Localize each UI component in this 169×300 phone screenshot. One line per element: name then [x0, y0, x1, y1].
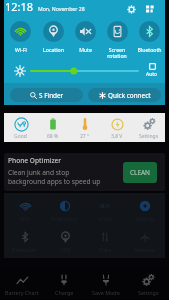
staticText: Location — [43, 46, 64, 53]
button[interactable]: 3,8 V — [101, 116, 133, 140]
button[interactable]: Quick connect — [88, 88, 161, 102]
button[interactable]: Auto — [143, 63, 161, 78]
button[interactable]: Settings — [133, 116, 165, 140]
staticText: Data — [99, 246, 111, 253]
staticText: Mute — [79, 46, 92, 53]
button[interactable]: Good — [4, 116, 37, 140]
button[interactable]: Screen rotation — [101, 20, 133, 58]
button[interactable]: Phone Optimizer — [4, 153, 165, 191]
button[interactable] — [31, 63, 138, 79]
staticText: Setting — [136, 215, 154, 222]
staticText: Settings — [138, 289, 159, 296]
button[interactable]: CLEAN — [123, 162, 157, 183]
staticText: Wi-Fi — [15, 46, 27, 53]
staticText: Battery Chart — [5, 289, 39, 296]
staticText: Auto — [146, 71, 158, 78]
button[interactable]: Bluetooth — [133, 20, 165, 53]
staticText: 68 % — [47, 133, 59, 140]
staticText: Brightness — [51, 215, 79, 222]
staticText: Screen rotation — [107, 46, 127, 58]
button[interactable]: GPS — [45, 227, 85, 253]
button[interactable]: Settings — [127, 273, 169, 296]
button[interactable]: Settings — [124, 2, 138, 16]
staticText: Charge — [55, 289, 74, 296]
button[interactable]: 27 ° — [69, 116, 101, 140]
button[interactable]: Battery Chart — [0, 273, 43, 296]
staticText: Wifi — [20, 215, 30, 222]
staticText: Quick connect — [108, 91, 151, 100]
staticText: Phone Optimizer — [8, 156, 62, 165]
button[interactable]: Wi-Fi — [4, 20, 37, 53]
button[interactable]: Charge — [43, 273, 85, 296]
button[interactable]: Save Mode — [85, 273, 127, 296]
button[interactable]: Edit quick settings — [143, 2, 157, 16]
staticText: 27 ° — [80, 133, 90, 140]
button[interactable]: Brightness — [13, 64, 27, 78]
staticText: Bluetooth — [137, 46, 162, 53]
staticText: S Finder — [39, 91, 64, 100]
button[interactable]: Brightness — [45, 196, 85, 222]
button[interactable]: S Finder — [10, 88, 83, 102]
staticText: 3,8 V — [111, 133, 123, 140]
staticText: Airplane — [134, 246, 156, 253]
staticText: GPS — [60, 246, 71, 253]
staticText: Save Mode — [92, 289, 120, 296]
button[interactable]: Location — [37, 20, 69, 53]
staticText: Mon, November 28 — [38, 5, 85, 12]
button[interactable]: Wifi — [4, 196, 45, 222]
button[interactable]: 68 % — [37, 116, 69, 140]
staticText: CLEAN — [130, 168, 150, 177]
button[interactable]: Setting — [125, 196, 165, 222]
staticText: Bluetooth — [12, 246, 38, 253]
button[interactable]: Bluetooth — [4, 227, 45, 253]
staticText: Clean junk and stop background apps to s… — [8, 168, 101, 186]
staticText: Good — [14, 133, 27, 140]
staticText: Settings — [139, 133, 159, 140]
staticText: Silent — [98, 215, 113, 222]
button[interactable]: Mute — [69, 20, 101, 53]
staticText: 12:18 — [5, 0, 34, 14]
